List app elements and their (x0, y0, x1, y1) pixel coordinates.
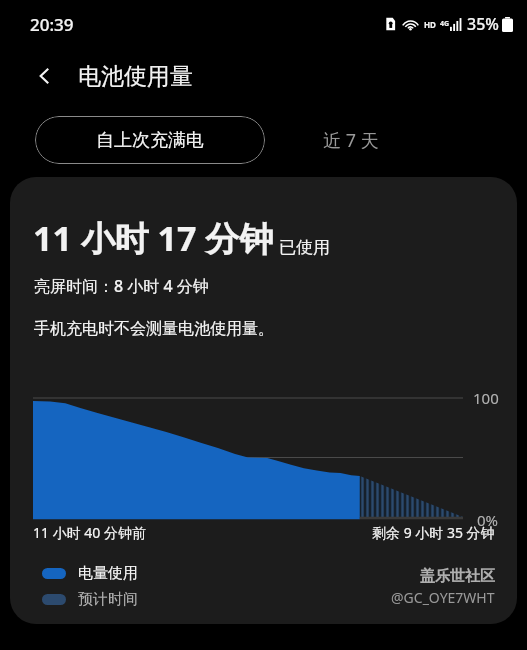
button[interactable]: 近 7 天 (309, 116, 393, 164)
staticText: 亮屏时间：8 小时 4 分钟 (34, 275, 209, 297)
staticText: 4G (440, 19, 450, 29)
staticText: 盖乐世社区 (420, 567, 495, 586)
staticText: 100 (473, 388, 499, 408)
button[interactable]: 自上次充满电 (35, 116, 265, 164)
staticText: 11 小时 17 分钟 (33, 215, 274, 261)
staticText: 20:39 (30, 13, 74, 36)
staticText: 35% (467, 13, 499, 35)
staticText: 剩余 9 小时 35 分钟 (372, 523, 495, 542)
staticText: 近 7 天 (323, 128, 379, 153)
staticText: 手机充电时不会测量电池使用量。 (34, 319, 274, 339)
staticText: 预计时间 (78, 590, 138, 609)
staticText: 电量使用 (78, 564, 138, 583)
staticText: 自上次充满电 (96, 129, 204, 152)
staticText: HD (424, 19, 436, 30)
staticText: 电池使用量 (78, 62, 193, 91)
staticText: 11 小时 40 分钟前 (33, 523, 146, 542)
staticText: 已使用 (279, 237, 330, 258)
staticText: 0% (477, 510, 499, 530)
button[interactable]: Back (22, 53, 68, 99)
staticText: @GC_OYE7WHT (391, 588, 495, 607)
